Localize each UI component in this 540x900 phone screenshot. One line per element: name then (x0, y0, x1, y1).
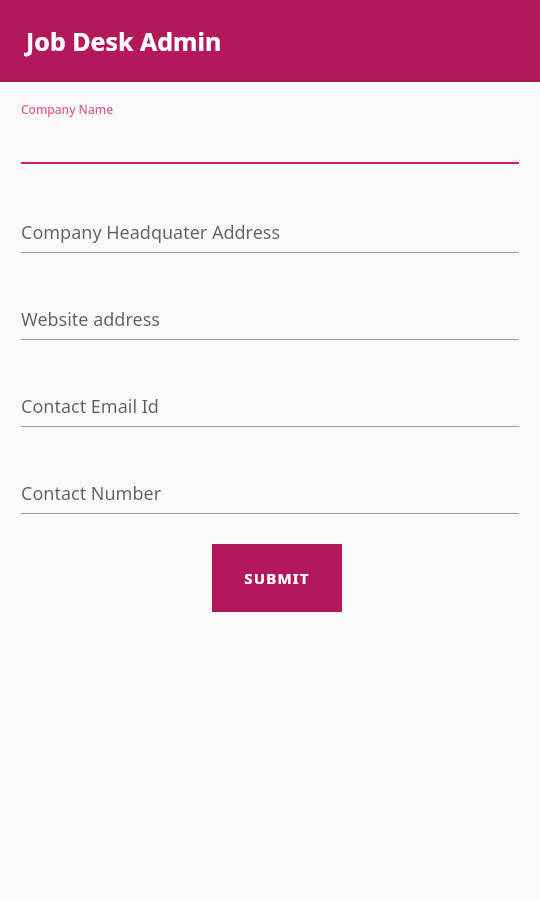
staticText: Contact Email Id (21, 394, 159, 419)
button[interactable]: SUBMIT (212, 544, 342, 612)
staticText: Contact Number (21, 481, 162, 506)
staticText: Website address (21, 307, 160, 332)
staticText: SUBMIT (244, 568, 310, 588)
button[interactable]: Contact Email Id (21, 340, 519, 427)
staticText: Company Headquater Address (21, 220, 281, 245)
staticText: Job Desk Admin (26, 24, 222, 58)
button[interactable]: Website address (21, 253, 519, 340)
button[interactable]: Company Name (21, 82, 519, 164)
button[interactable]: Contact Number (21, 427, 519, 514)
button[interactable]: Company Headquater Address (21, 164, 519, 253)
staticText: Company Name (21, 101, 114, 117)
